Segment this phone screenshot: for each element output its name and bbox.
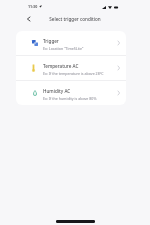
button[interactable]: Trigger <box>16 31 126 55</box>
staticText: Ex: Location “TimeSLite” <box>43 46 84 51</box>
staticText: Trigger <box>43 38 59 44</box>
button[interactable]: Temperature AC <box>16 56 126 80</box>
staticText: 11:30 <box>28 4 38 9</box>
staticText: Temperature AC <box>43 63 79 69</box>
staticText: Ex: If the temperature is above 28°C <box>43 71 104 76</box>
staticText: Ex: If the humidity is above 80% <box>43 96 97 101</box>
staticText: Humidity AC <box>43 88 71 94</box>
button[interactable]: Humidity AC <box>16 81 126 105</box>
button[interactable]: Back <box>22 13 34 25</box>
staticText: Select trigger condition <box>49 16 101 22</box>
